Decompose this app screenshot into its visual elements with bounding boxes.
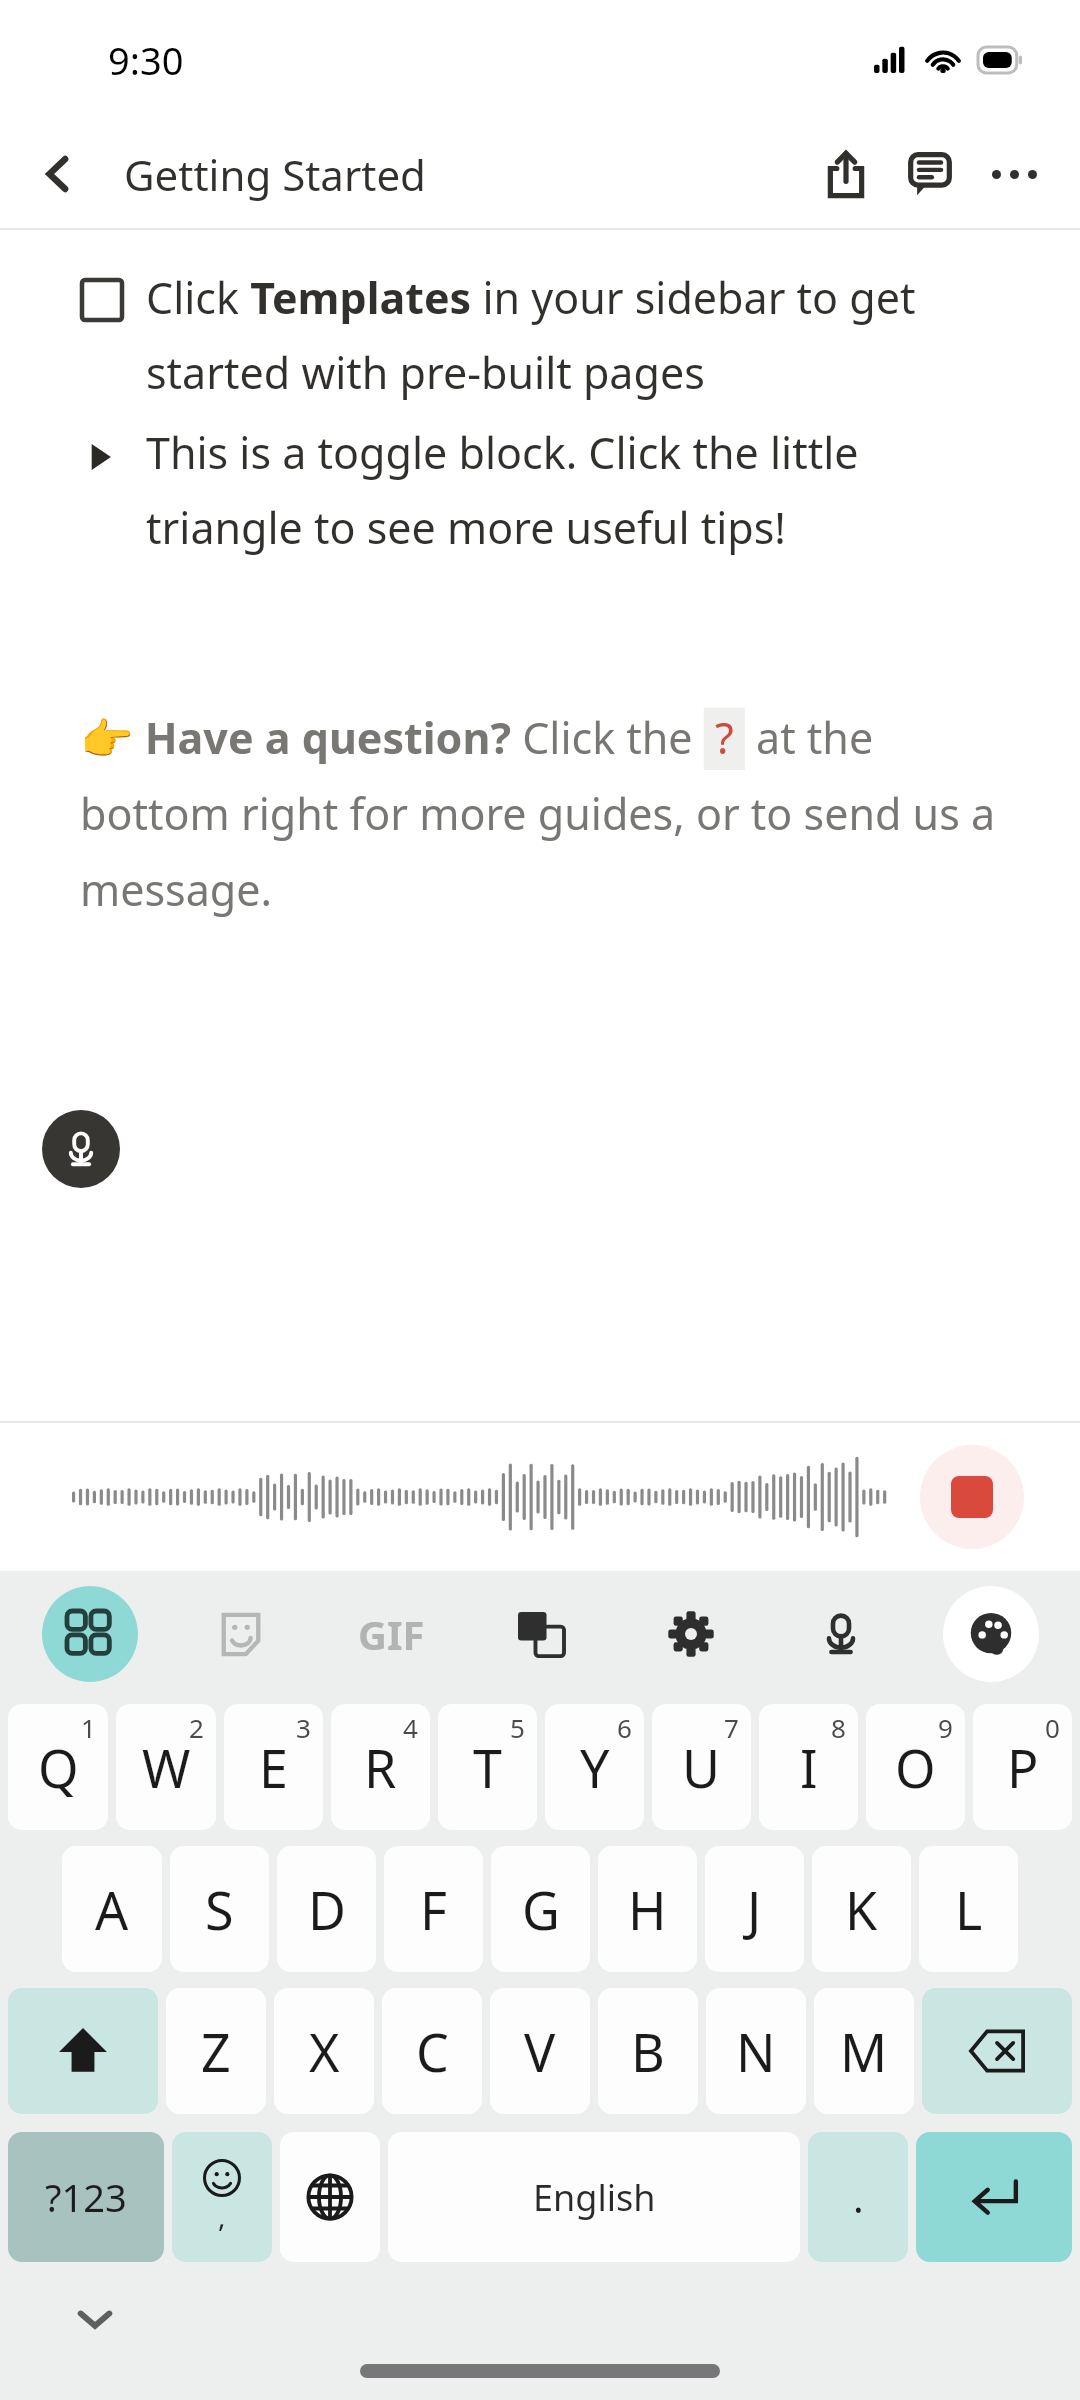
button[interactable]: M: [814, 1988, 914, 2114]
staticText: ?123: [45, 2171, 127, 2223]
staticText: 9: [938, 1710, 953, 1745]
button[interactable]: U: [652, 1704, 751, 1830]
button[interactable]: ?123: [8, 2132, 164, 2262]
staticText: S: [205, 1874, 234, 1945]
button[interactable]: E: [224, 1704, 323, 1830]
button[interactable]: V: [490, 1988, 590, 2114]
staticText: 4: [403, 1710, 418, 1745]
button[interactable]: Change language: [280, 2132, 380, 2262]
button[interactable]: Hide keyboard: [62, 2286, 128, 2352]
staticText: L: [955, 1874, 983, 1945]
button[interactable]: Share: [804, 132, 888, 216]
staticText: A: [95, 1874, 129, 1945]
button[interactable]: W: [116, 1704, 216, 1830]
staticText: 3: [296, 1710, 311, 1745]
button[interactable]: Click Templates in your sidebar to get s…: [82, 268, 1010, 401]
staticText: K: [845, 1874, 878, 1945]
button[interactable]: P: [973, 1704, 1072, 1830]
staticText: 👉 Have a question? Click the ? at the bo…: [80, 708, 1016, 918]
staticText: Y: [580, 1732, 610, 1803]
button[interactable]: D: [277, 1846, 376, 1972]
button[interactable]: L: [919, 1846, 1018, 1972]
button[interactable]: G: [491, 1846, 590, 1972]
staticText: G: [522, 1874, 560, 1945]
button[interactable]: Theme: [916, 1571, 1066, 1696]
staticText: 9:30: [108, 34, 184, 86]
staticText: R: [364, 1732, 397, 1803]
staticText: N: [736, 2016, 776, 2087]
staticText: E: [259, 1732, 288, 1803]
button[interactable]: R: [331, 1704, 430, 1830]
button[interactable]: GIF: [316, 1571, 466, 1696]
button[interactable]: H: [598, 1846, 697, 1972]
staticText: J: [747, 1874, 762, 1945]
staticText: 8: [831, 1710, 846, 1745]
staticText: Click Templates in your sidebar to get s…: [146, 268, 1010, 401]
button[interactable]: S: [170, 1846, 269, 1972]
button[interactable]: Backspace: [922, 1988, 1072, 2114]
staticText: V: [524, 2016, 556, 2087]
button[interactable]: Comments: [888, 132, 972, 216]
button[interactable]: X: [274, 1988, 374, 2114]
staticText: 7: [724, 1710, 739, 1745]
button[interactable]: Stickers: [165, 1571, 316, 1696]
button[interactable]: N: [706, 1988, 806, 2114]
staticText: English: [533, 2173, 656, 2222]
button[interactable]: O: [866, 1704, 965, 1830]
staticText: ,: [218, 2197, 226, 2235]
button[interactable]: Y: [545, 1704, 644, 1830]
staticText: I: [800, 1732, 818, 1803]
staticText: 5: [510, 1710, 525, 1745]
button[interactable]: I: [759, 1704, 858, 1830]
button[interactable]: Voice input: [42, 1110, 120, 1188]
staticText: D: [308, 1874, 346, 1945]
button[interactable]: More options: [972, 132, 1056, 216]
button[interactable]: F: [384, 1846, 483, 1972]
button[interactable]: Voice typing: [766, 1571, 916, 1696]
button[interactable]: Settings: [616, 1571, 766, 1696]
button[interactable]: Enter: [916, 2132, 1072, 2262]
staticText: 1: [81, 1710, 96, 1745]
staticText: B: [631, 2016, 665, 2087]
button[interactable]: Apps: [14, 1571, 165, 1696]
button[interactable]: K: [812, 1846, 911, 1972]
button[interactable]: J: [705, 1846, 804, 1972]
staticText: Q: [38, 1732, 79, 1803]
button[interactable]: Stop recording: [920, 1445, 1024, 1549]
button[interactable]: Q: [8, 1704, 108, 1830]
staticText: .: [853, 2170, 864, 2224]
staticText: This is a toggle block. Click the little…: [146, 423, 1010, 556]
button[interactable]: Emoji: [172, 2132, 272, 2262]
staticText: 2: [189, 1710, 204, 1745]
button[interactable]: Shift: [8, 1988, 158, 2114]
button[interactable]: T: [438, 1704, 537, 1830]
button[interactable]: C: [382, 1988, 482, 2114]
button[interactable]: Z: [166, 1988, 266, 2114]
staticText: T: [473, 1732, 502, 1803]
staticText: GIF: [358, 1607, 425, 1661]
staticText: X: [309, 2016, 340, 2087]
staticText: Getting Started: [124, 146, 426, 203]
staticText: U: [682, 1732, 721, 1803]
button[interactable]: .: [808, 2132, 908, 2262]
button[interactable]: Back: [28, 143, 90, 205]
staticText: H: [628, 1874, 667, 1945]
staticText: F: [420, 1874, 447, 1945]
button[interactable]: A: [62, 1846, 162, 1972]
staticText: Z: [201, 2016, 231, 2087]
staticText: C: [416, 2016, 449, 2087]
staticText: P: [1007, 1732, 1039, 1803]
staticText: W: [142, 1732, 191, 1803]
button[interactable]: B: [598, 1988, 698, 2114]
staticText: 6: [617, 1710, 632, 1745]
button[interactable]: Translate: [466, 1571, 616, 1696]
staticText: O: [895, 1732, 936, 1803]
staticText: 0: [1045, 1710, 1060, 1745]
staticText: M: [840, 2016, 888, 2087]
button[interactable]: English: [388, 2132, 800, 2262]
button[interactable]: This is a toggle block. Click the little…: [82, 423, 1010, 556]
